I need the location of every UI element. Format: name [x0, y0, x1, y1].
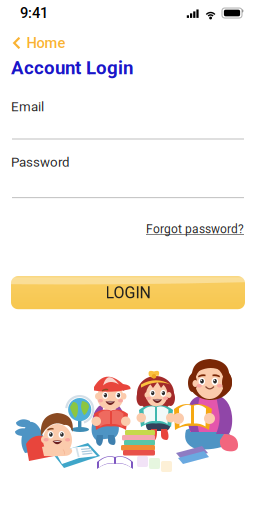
staticText: Forgot password?: [146, 222, 244, 236]
staticText: LOGIN: [105, 283, 150, 302]
staticText: 9:41: [20, 4, 48, 22]
button[interactable]: LOGIN: [0, 276, 256, 309]
staticText: Password: [11, 154, 70, 170]
staticText: Account Login: [11, 57, 133, 79]
button[interactable]: Home: [0, 33, 256, 53]
staticText: Email: [11, 99, 44, 114]
button[interactable]: Forgot password?: [0, 198, 256, 236]
staticText: Home: [27, 34, 66, 52]
